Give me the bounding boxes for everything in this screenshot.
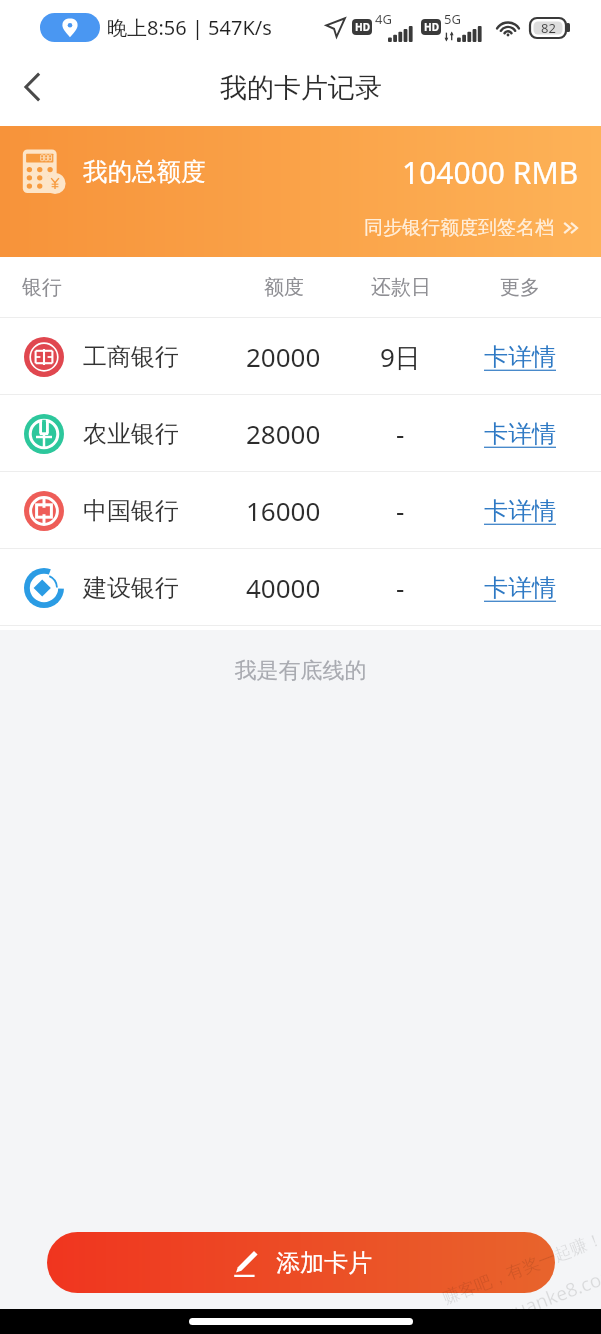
staticText: 我的总额度 (83, 156, 206, 187)
button[interactable]: 同步银行额度到签名档 (364, 216, 581, 240)
staticText: 晚上8:56 | 547K/s (107, 14, 272, 41)
button[interactable]: 建设银行 (0, 549, 601, 626)
button[interactable]: 工商银行 (0, 318, 601, 395)
staticText: 卡详情 (484, 342, 556, 372)
staticText: HD (424, 20, 439, 34)
staticText: 额度 (264, 275, 304, 300)
button[interactable]: 农业银行 (0, 395, 601, 472)
staticText: 82 (541, 19, 556, 37)
staticText: - (396, 416, 405, 451)
button[interactable]: 卡详情 (484, 573, 556, 603)
button[interactable]: 中国银行 (0, 472, 601, 549)
button[interactable]: 卡详情 (484, 419, 556, 449)
staticText: 我的卡片记录 (220, 71, 382, 105)
staticText: www.zuanke8.com (456, 1260, 601, 1334)
button[interactable]: Back (0, 58, 64, 122)
staticText: 农业银行 (83, 419, 179, 449)
staticText: - (396, 570, 405, 605)
staticText: 20000 (246, 339, 321, 374)
button[interactable]: 添加卡片 (47, 1232, 555, 1293)
staticText: - (396, 493, 405, 528)
staticText: 中国银行 (83, 496, 179, 526)
button[interactable]: 卡详情 (484, 496, 556, 526)
staticText: 银行 (22, 275, 62, 300)
staticText: 40000 (246, 570, 321, 605)
staticText: 卡详情 (484, 496, 556, 526)
staticText: 还款日 (371, 275, 431, 300)
staticText: 工商银行 (83, 342, 179, 372)
staticText: 104000 RMB (402, 152, 579, 193)
staticText: 卡详情 (484, 573, 556, 603)
staticText: 赚客吧，有奖一起赚！ (440, 1228, 601, 1309)
staticText: 4G (375, 10, 392, 28)
staticText: 更多 (500, 275, 540, 300)
staticText: 28000 (246, 416, 321, 451)
staticText: 卡详情 (484, 419, 556, 449)
staticText: 5G (444, 10, 461, 28)
staticText: 添加卡片 (276, 1248, 372, 1278)
button[interactable]: 卡详情 (484, 342, 556, 372)
staticText: 建设银行 (83, 573, 179, 603)
staticText: 同步银行额度到签名档 (364, 216, 554, 240)
staticText: 16000 (246, 493, 321, 528)
staticText: HD (355, 20, 370, 34)
staticText: 9日 (380, 339, 421, 375)
staticText: 我是有底线的 (0, 657, 601, 685)
